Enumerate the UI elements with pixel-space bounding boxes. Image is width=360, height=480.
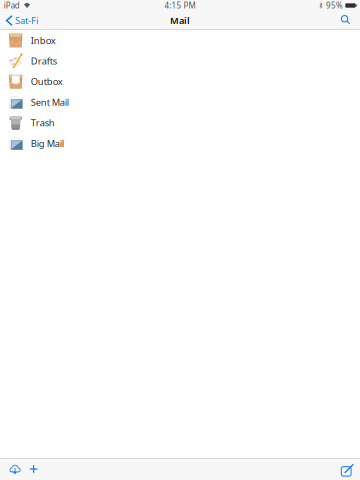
staticText: Sat-Fi [15, 14, 38, 27]
button[interactable]: Compose [334, 458, 360, 480]
button[interactable]: Drafts [0, 51, 360, 71]
staticText: 95% [326, 0, 343, 11]
staticText: iPad [4, 0, 20, 11]
staticText: 4:15 PM [164, 0, 195, 11]
staticText: Inbox [31, 34, 56, 46]
button[interactable]: Inbox [0, 30, 360, 51]
staticText: Big Mail [31, 137, 64, 149]
staticText: Sent Mail [31, 96, 69, 108]
staticText: Drafts [31, 55, 57, 67]
staticText: Outbox [31, 75, 63, 88]
button[interactable]: Sat-Fi [0, 14, 43, 27]
button[interactable]: New mailbox [25, 458, 43, 480]
button[interactable]: Trash [0, 112, 360, 133]
button[interactable]: Check for new mail [0, 458, 25, 480]
button[interactable]: Sent Mail [0, 92, 360, 112]
button[interactable]: Outbox [0, 71, 360, 92]
staticText: Mail [170, 14, 190, 27]
staticText: Trash [31, 116, 55, 129]
button[interactable]: Search [335, 13, 360, 28]
button[interactable]: Big Mail [0, 133, 360, 154]
